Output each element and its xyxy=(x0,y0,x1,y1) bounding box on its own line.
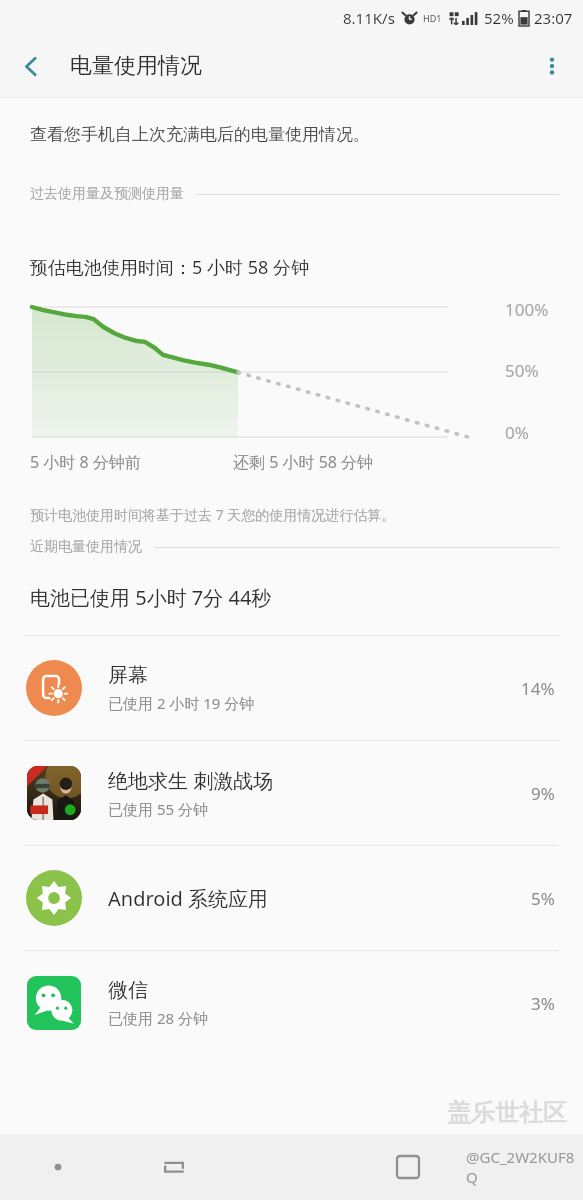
staticText: @GC_2W2KUF8Q xyxy=(466,1147,583,1187)
staticText: 已使用 55 分钟 xyxy=(108,799,208,819)
button[interactable]: Android 系统应用 xyxy=(0,846,583,950)
staticText: 预估电池使用时间：5 小时 58 分钟 xyxy=(30,255,309,280)
staticText: 9% xyxy=(531,782,555,805)
staticText: 近期电量使用情况 xyxy=(30,538,142,556)
staticText: 3% xyxy=(531,992,555,1015)
staticText: 已使用 2 小时 19 分钟 xyxy=(108,693,255,713)
staticText: 查看您手机自上次充满电后的电量使用情况。 xyxy=(30,124,370,145)
button[interactable]: Back xyxy=(116,1134,232,1200)
staticText: 23:07 xyxy=(534,8,573,28)
staticText: 预计电池使用时间将基于过去 7 天您的使用情况进行估算。 xyxy=(30,505,396,524)
staticText: 盖乐世社区 xyxy=(447,1098,567,1128)
staticText: 过去使用量及预测使用量 xyxy=(30,185,184,203)
button[interactable]: 微信 xyxy=(0,951,583,1055)
staticText: 屏幕 xyxy=(108,663,148,688)
staticText: 52% xyxy=(484,8,514,28)
staticText: 14% xyxy=(521,677,555,700)
staticText: 0% xyxy=(505,421,529,443)
staticText: 5 小时 8 分钟前 xyxy=(30,451,141,473)
staticText: 还剩 5 小时 58 分钟 xyxy=(233,451,374,473)
staticText: 50% xyxy=(505,359,539,381)
staticText: 8.11K/s xyxy=(343,8,395,28)
staticText: 100% xyxy=(505,298,549,320)
staticText: HD1 xyxy=(423,12,442,24)
button[interactable]: 屏幕 xyxy=(0,636,583,740)
button[interactable]: Recents xyxy=(349,1134,466,1200)
staticText: 微信 xyxy=(108,978,148,1003)
button[interactable]: Watermark xyxy=(466,1134,583,1200)
button[interactable]: Back xyxy=(0,35,62,97)
button[interactable]: 绝地求生 刺激战场 xyxy=(0,741,583,845)
button[interactable]: Menu xyxy=(0,1134,116,1200)
staticText: 电量使用情况 xyxy=(70,52,202,80)
staticText: 已使用 28 分钟 xyxy=(108,1008,208,1028)
staticText: 绝地求生 刺激战场 xyxy=(108,767,274,794)
button[interactable]: More options xyxy=(521,35,583,97)
staticText: 电池已使用 5小时 7分 44秒 xyxy=(30,584,272,611)
staticText: 5% xyxy=(531,887,555,910)
staticText: Android 系统应用 xyxy=(108,885,269,912)
